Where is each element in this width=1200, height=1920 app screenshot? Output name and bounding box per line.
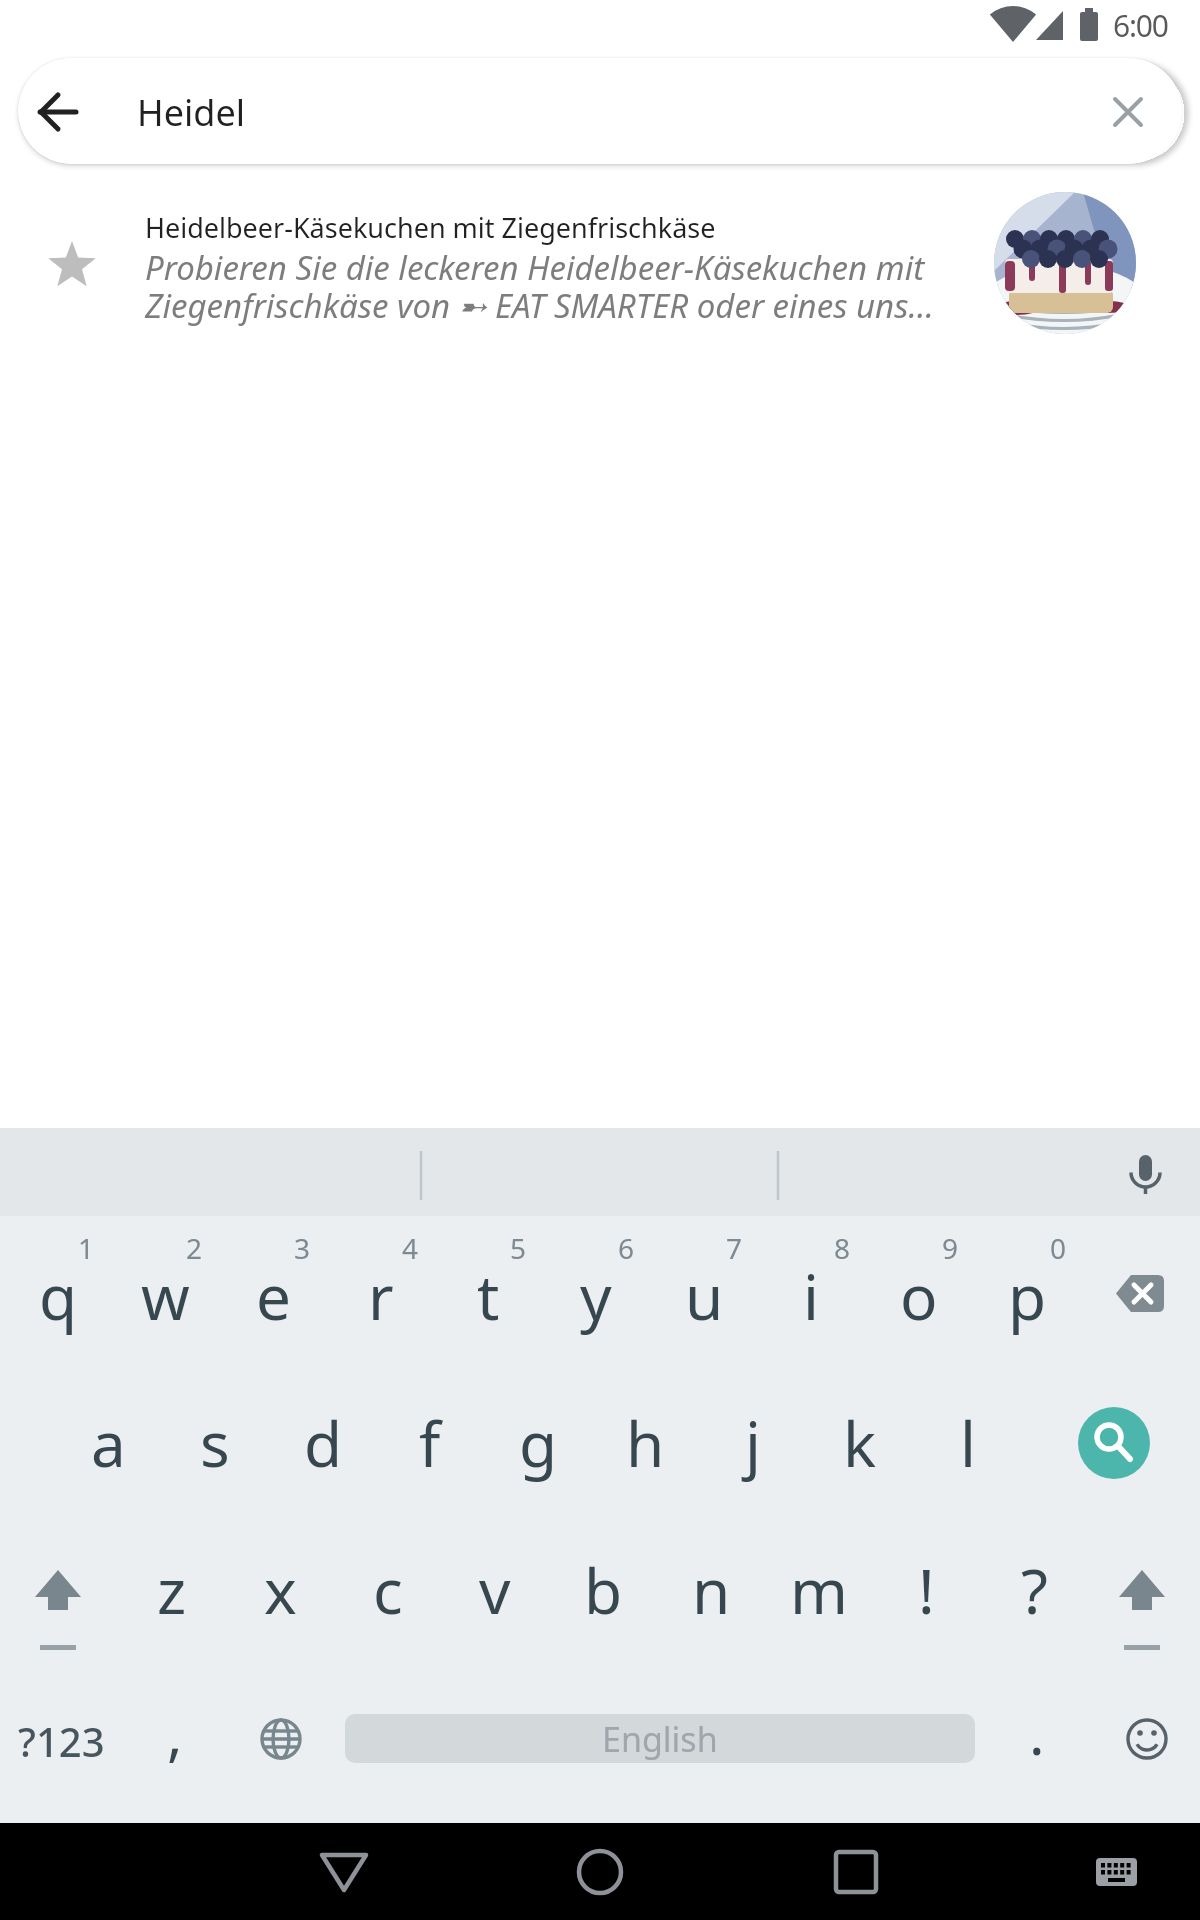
- staticText: f: [419, 1401, 441, 1485]
- staticText: e: [256, 1254, 291, 1338]
- button[interactable]: ?: [982, 1525, 1086, 1655]
- staticText: 0: [1050, 1229, 1067, 1267]
- button[interactable]: x: [228, 1525, 332, 1655]
- button[interactable]: c: [336, 1525, 440, 1655]
- button[interactable]: [1090, 1530, 1194, 1650]
- button[interactable]: e: [221, 1231, 325, 1361]
- staticText: y: [580, 1254, 612, 1338]
- staticText: 2: [186, 1229, 203, 1267]
- staticText: k: [843, 1401, 877, 1485]
- button[interactable]: k: [808, 1378, 912, 1508]
- staticText: x: [264, 1548, 297, 1632]
- staticText: Probieren Sie die leckeren Heidelbeer-Kä…: [145, 245, 925, 290]
- button[interactable]: [1096, 79, 1160, 143]
- button[interactable]: [1095, 1687, 1199, 1791]
- button[interactable]: [1062, 1391, 1166, 1495]
- button[interactable]: w: [113, 1231, 217, 1361]
- button[interactable]: ,: [130, 1672, 220, 1792]
- staticText: c: [373, 1548, 403, 1632]
- button[interactable]: English: [345, 1714, 975, 1763]
- staticText: Heidelbeer-Käsekuchen mit Ziegenfrischkä…: [145, 209, 716, 246]
- staticText: l: [960, 1401, 976, 1485]
- button[interactable]: [0, 186, 1200, 346]
- staticText: !: [918, 1548, 935, 1632]
- staticText: r: [368, 1254, 394, 1338]
- button[interactable]: t: [436, 1231, 540, 1361]
- staticText: d: [304, 1401, 343, 1485]
- button[interactable]: d: [271, 1378, 375, 1508]
- staticText: 6: [618, 1229, 635, 1267]
- staticText: ,: [167, 1693, 183, 1772]
- staticText: Ziegenfrischkäse von ➸ EAT SMARTER oder …: [145, 283, 934, 328]
- staticText: o: [900, 1254, 938, 1338]
- button[interactable]: [25, 79, 89, 143]
- staticText: 4: [402, 1229, 419, 1267]
- staticText: v: [479, 1548, 511, 1632]
- button[interactable]: h: [593, 1378, 697, 1508]
- button[interactable]: f: [378, 1378, 482, 1508]
- staticText: 9: [942, 1229, 959, 1267]
- staticText: 1: [78, 1229, 95, 1267]
- staticText: q: [39, 1254, 78, 1338]
- button[interactable]: .: [992, 1672, 1082, 1792]
- button[interactable]: z: [120, 1525, 224, 1655]
- staticText: English: [602, 1716, 718, 1762]
- staticText: 5: [510, 1229, 527, 1267]
- staticText: 8: [834, 1229, 851, 1267]
- staticText: ?: [1021, 1548, 1048, 1632]
- button[interactable]: [806, 1822, 906, 1920]
- staticText: s: [200, 1401, 230, 1485]
- button[interactable]: g: [486, 1378, 590, 1508]
- button[interactable]: y: [544, 1231, 648, 1361]
- button[interactable]: b: [551, 1525, 655, 1655]
- staticText: u: [685, 1254, 724, 1338]
- button[interactable]: [18, 58, 1182, 164]
- staticText: p: [1008, 1254, 1047, 1338]
- button[interactable]: q: [6, 1231, 110, 1361]
- staticText: w: [141, 1254, 190, 1338]
- staticText: i: [803, 1254, 819, 1338]
- button[interactable]: s: [163, 1378, 267, 1508]
- button[interactable]: j: [701, 1378, 805, 1508]
- staticText: m: [790, 1548, 848, 1632]
- button[interactable]: ?123: [6, 1681, 116, 1801]
- staticText: j: [745, 1401, 761, 1485]
- button[interactable]: [1066, 1822, 1166, 1920]
- staticText: 7: [726, 1229, 743, 1267]
- staticText: h: [626, 1401, 665, 1485]
- button[interactable]: r: [329, 1231, 433, 1361]
- button[interactable]: [1093, 1130, 1197, 1216]
- staticText: Heidel: [137, 88, 246, 137]
- button[interactable]: l: [916, 1378, 1020, 1508]
- staticText: g: [519, 1401, 558, 1485]
- button[interactable]: [229, 1687, 333, 1791]
- button[interactable]: !: [874, 1525, 978, 1655]
- staticText: n: [692, 1548, 731, 1632]
- staticText: .: [1029, 1693, 1045, 1772]
- staticText: t: [477, 1254, 500, 1338]
- staticText: a: [91, 1401, 126, 1485]
- button[interactable]: [550, 1822, 650, 1920]
- button[interactable]: n: [659, 1525, 763, 1655]
- button[interactable]: m: [767, 1525, 871, 1655]
- button[interactable]: [1088, 1236, 1192, 1356]
- staticText: ?123: [18, 1714, 105, 1768]
- button[interactable]: u: [652, 1231, 756, 1361]
- button[interactable]: [6, 1530, 110, 1650]
- staticText: 3: [294, 1229, 311, 1267]
- button[interactable]: i: [759, 1231, 863, 1361]
- button[interactable]: v: [443, 1525, 547, 1655]
- button[interactable]: o: [867, 1231, 971, 1361]
- staticText: 6:00: [1113, 5, 1168, 46]
- staticText: b: [584, 1548, 623, 1632]
- button[interactable]: [294, 1822, 394, 1920]
- staticText: z: [157, 1548, 187, 1632]
- button[interactable]: p: [975, 1231, 1079, 1361]
- button[interactable]: a: [56, 1378, 160, 1508]
